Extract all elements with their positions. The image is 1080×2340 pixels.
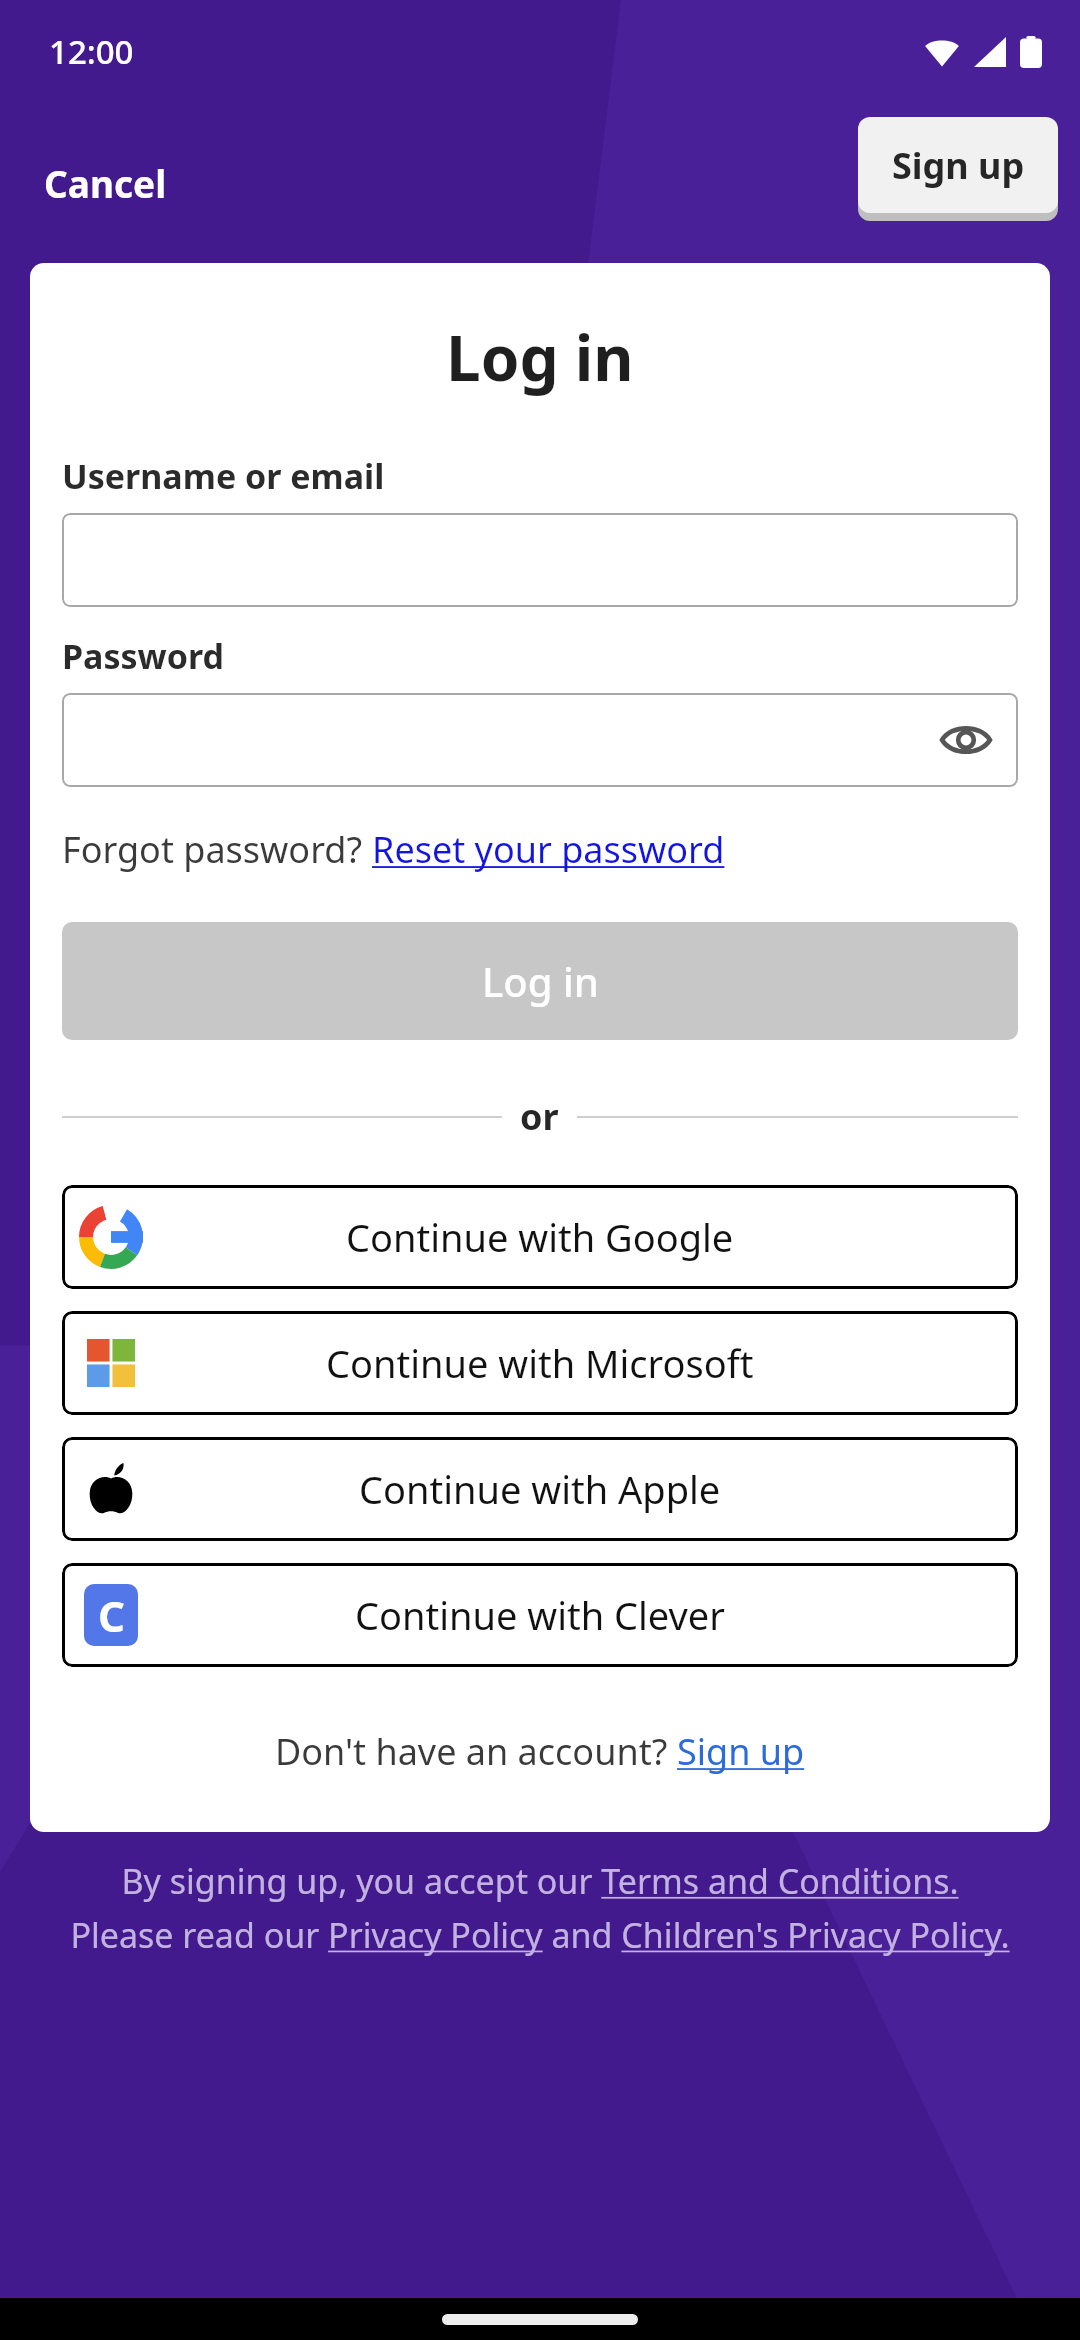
button[interactable]: Sign up (677, 1727, 805, 1776)
staticText: Username or email (62, 453, 385, 499)
staticText: Log in (482, 954, 599, 1008)
button[interactable]: Sign up (858, 117, 1058, 213)
button[interactable]: Show password (62, 693, 1018, 787)
staticText: Continue with Apple (359, 1463, 721, 1515)
staticText: Forgot password? (62, 825, 372, 874)
staticText: Sign up (892, 141, 1025, 190)
staticText: 12:00 (49, 29, 134, 74)
staticText: By signing up, you accept our Terms and … (34, 1858, 1046, 1958)
button[interactable]: Continue with Microsoft (62, 1311, 1018, 1415)
staticText: Password (62, 633, 224, 679)
button[interactable]: Cancel (22, 144, 189, 222)
staticText: Log in (446, 315, 634, 399)
staticText: Continue with Clever (355, 1589, 725, 1641)
button[interactable]: C (62, 1563, 1018, 1667)
button[interactable]: Reset your password (372, 825, 725, 874)
button[interactable] (62, 513, 1018, 607)
staticText: Continue with Google (346, 1211, 734, 1263)
staticText: C (98, 1587, 125, 1644)
button[interactable]: Log in (62, 922, 1018, 1040)
button[interactable]: By signing up, you accept our Terms and … (34, 1858, 1046, 1958)
button[interactable]: Show password (930, 704, 1002, 776)
button[interactable]: Continue with Apple (62, 1437, 1018, 1541)
button[interactable]: Continue with Google (62, 1185, 1018, 1289)
staticText: Continue with Microsoft (326, 1337, 754, 1389)
staticText: or (520, 1092, 559, 1141)
staticText: Don't have an account? (275, 1727, 677, 1776)
